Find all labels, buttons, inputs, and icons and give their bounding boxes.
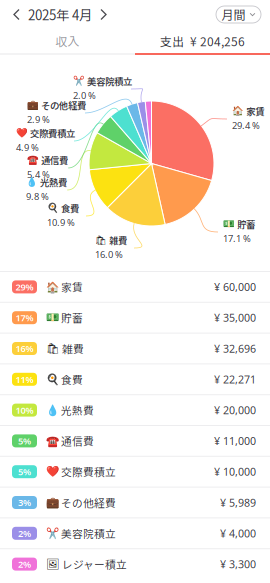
staticText: 9.8 % [26,190,49,202]
staticText: 💼 [27,100,39,111]
staticText: 💵 [223,219,235,230]
staticText: 3% [18,496,31,509]
staticText: 交際費積立 [61,464,116,479]
button[interactable]: 2% [0,517,270,548]
staticText: 🍳 [47,203,59,214]
staticText: 💵 [46,312,59,324]
staticText: 光熱費 [40,175,67,189]
staticText: 5% [18,465,31,478]
staticText: ¥ 20,000 [214,403,256,417]
staticText: 2025年 4月 [28,5,92,24]
button[interactable]: 支出 ¥ 204,256 [135,29,270,53]
staticText: 2% [18,527,31,539]
staticText: 月間 [221,6,245,23]
staticText: ☎️ [27,155,39,166]
staticText: 4.9 % [16,141,39,153]
staticText: 交際費積立 [30,126,75,140]
staticText: 食費 [61,372,83,387]
staticText: 2.9 % [27,113,50,125]
staticText: 貯蓄 [61,310,83,325]
staticText: 2.0 % [73,89,96,101]
staticText: 10.9 % [47,216,75,228]
staticText: 🛍 [95,235,107,246]
staticText: ¥ 3,300 [220,557,256,571]
staticText: 家賃 [61,279,83,295]
staticText: その他経費 [61,495,116,510]
staticText: 💧 [26,177,38,188]
staticText: ¥ 5,989 [220,495,256,510]
staticText: 17.1 % [223,232,251,244]
button[interactable]: 前の月 [10,2,24,26]
staticText: ¥ 32,696 [214,341,256,356]
staticText: ¥ 11,000 [214,434,256,448]
staticText: 5.4 % [27,168,50,180]
staticText: 通信費 [41,153,68,167]
staticText: ✂️ [46,527,59,539]
button[interactable]: 3% [0,487,270,517]
staticText: ❤️ [16,128,28,139]
staticText: 5% [18,435,31,447]
staticText: 💼 [46,496,59,509]
button[interactable]: 収入 [0,29,135,53]
button[interactable]: 月間 [216,6,261,23]
staticText: ¥ 10,000 [214,465,256,479]
staticText: 通信費 [61,433,94,449]
staticText: その他経費 [41,98,86,112]
staticText: 美容院積立 [87,74,132,88]
button[interactable]: 5% [0,425,270,456]
staticText: 🍳 [46,373,59,385]
staticText: ✂️ [73,76,85,87]
staticText: 光熱費 [61,402,94,418]
staticText: 🛍 [46,342,60,355]
staticText: 16.0 % [95,248,123,260]
staticText: ❤️ [46,466,59,478]
button[interactable]: 10% [0,394,270,425]
staticText: 美容院積立 [61,526,116,541]
staticText: 支出 ¥ 204,256 [160,32,245,50]
staticText: ¥ 22,271 [214,372,256,386]
staticText: 16% [15,342,33,355]
staticText: 🏠 [46,281,59,293]
staticText: 食費 [61,201,79,215]
staticText: 雑費 [109,233,127,247]
staticText: ¥ 60,000 [214,280,256,294]
staticText: ☎️ [46,435,59,447]
staticText: 収入 [55,32,79,50]
button[interactable]: 次の月 [96,2,110,26]
staticText: 🖼 [46,558,60,570]
staticText: 29% [15,281,33,293]
staticText: 11% [15,373,33,385]
staticText: ¥ 35,000 [214,311,256,325]
staticText: 2% [18,558,31,570]
staticText: ¥ 4,000 [220,526,256,540]
staticText: 17% [15,311,33,324]
button[interactable]: 2% [0,548,270,579]
button[interactable]: 11% [0,363,270,394]
staticText: レジャー積立 [62,556,127,572]
button[interactable]: 16% [0,333,270,363]
staticText: 29.4 % [232,119,260,131]
staticText: 家賃 [246,104,264,118]
button[interactable]: 17% [0,302,270,333]
button[interactable]: 29% [0,271,270,302]
staticText: 10% [15,404,33,416]
staticText: 💧 [46,404,59,416]
staticText: 雑費 [62,341,84,356]
staticText: 貯蓄 [237,217,255,231]
button[interactable]: 5% [0,456,270,487]
staticText: 🏠 [232,106,244,117]
